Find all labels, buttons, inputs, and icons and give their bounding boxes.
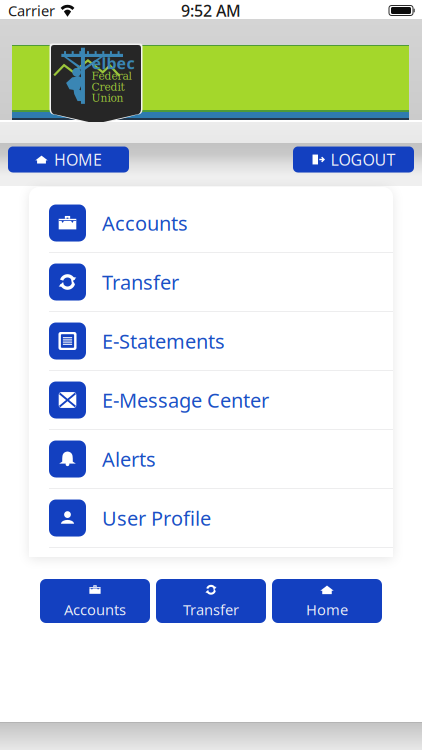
staticText: Credit	[91, 81, 124, 93]
button[interactable]: Home	[272, 579, 382, 623]
staticText: Federal	[91, 70, 131, 82]
staticText: Accounts	[102, 210, 188, 236]
staticText: Carrier	[8, 1, 55, 20]
staticText: E-Statements	[102, 328, 225, 354]
staticText: Accounts	[64, 600, 126, 619]
button[interactable]: E-Statements	[29, 312, 393, 370]
button[interactable]: Transfer	[156, 579, 266, 623]
staticText: 9:52 AM	[181, 0, 241, 21]
button[interactable]: Alerts	[29, 430, 393, 488]
button[interactable]: E-Message Center	[29, 371, 393, 429]
staticText: HOME	[54, 149, 102, 170]
staticText: Home	[306, 600, 348, 619]
button[interactable]: User Profile	[29, 489, 393, 547]
staticText: Union	[91, 92, 123, 104]
button[interactable]: HOME	[8, 146, 129, 172]
staticText: Transfer	[102, 269, 179, 295]
staticText: elbec	[91, 52, 134, 74]
button[interactable]: LOGOUT	[293, 146, 414, 172]
staticText: LOGOUT	[330, 149, 395, 170]
button[interactable]: Accounts	[29, 194, 393, 252]
button[interactable]: Transfer	[29, 253, 393, 311]
staticText: E-Message Center	[102, 387, 269, 413]
staticText: Transfer	[183, 600, 239, 619]
staticText: User Profile	[102, 505, 211, 531]
button[interactable]: Accounts	[40, 579, 150, 623]
staticText: Alerts	[102, 446, 156, 472]
